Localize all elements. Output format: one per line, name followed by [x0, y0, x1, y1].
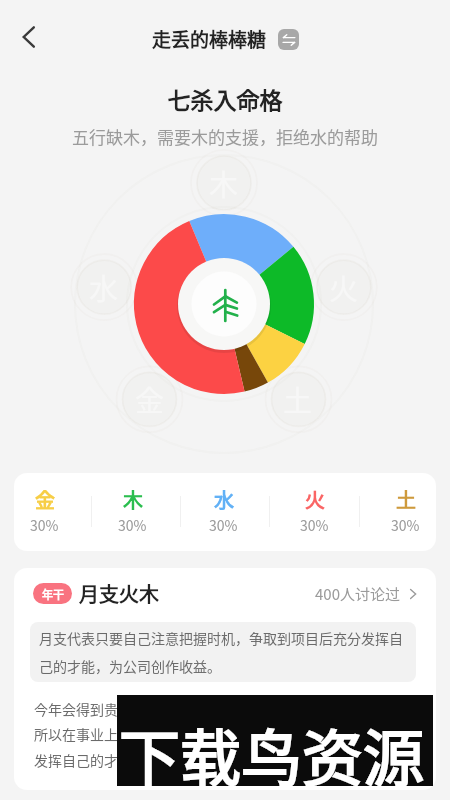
button[interactable]: 木 [92, 473, 172, 551]
staticText: 30% [30, 515, 59, 535]
staticText: 五行缺木，需要木的支援，拒绝水的帮助 [0, 124, 450, 149]
staticText: 木 [123, 485, 143, 514]
button[interactable]: 火 [274, 473, 354, 551]
staticText: 土 [396, 485, 416, 514]
button[interactable]: 土 [365, 473, 436, 551]
staticText: 七杀入命格 [0, 82, 450, 115]
staticText: 月支代表只要自己注意把握时机，争取到项目后充分发挥自己的才能，为公司创作收益。 [39, 628, 413, 676]
button[interactable]: 400人讨论过 [315, 583, 419, 605]
button[interactable]: Switch chart [278, 29, 299, 50]
staticText: 30% [391, 515, 420, 535]
staticText: 30% [209, 515, 238, 535]
staticText: 水 [214, 485, 234, 514]
button[interactable]: Back [8, 16, 50, 58]
staticText: 今年会得到贵人的帮助，事业上会有较大的提升空间和机会，所以在事业上只要自己注意把… [34, 699, 418, 770]
staticText: 下载鸟资源 [119, 710, 425, 798]
staticText: 走丢的棒棒糖 [152, 25, 267, 53]
button[interactable]: 金 [14, 473, 84, 551]
staticText: 30% [300, 515, 329, 535]
staticText: 金 [35, 485, 55, 514]
staticText: 火 [305, 485, 325, 514]
staticText: 年干 [42, 586, 64, 602]
button[interactable]: 水 [183, 473, 263, 551]
staticText: 400人讨论过 [315, 583, 400, 605]
staticText: 月支火木 [79, 579, 159, 608]
staticText: 30% [118, 515, 147, 535]
